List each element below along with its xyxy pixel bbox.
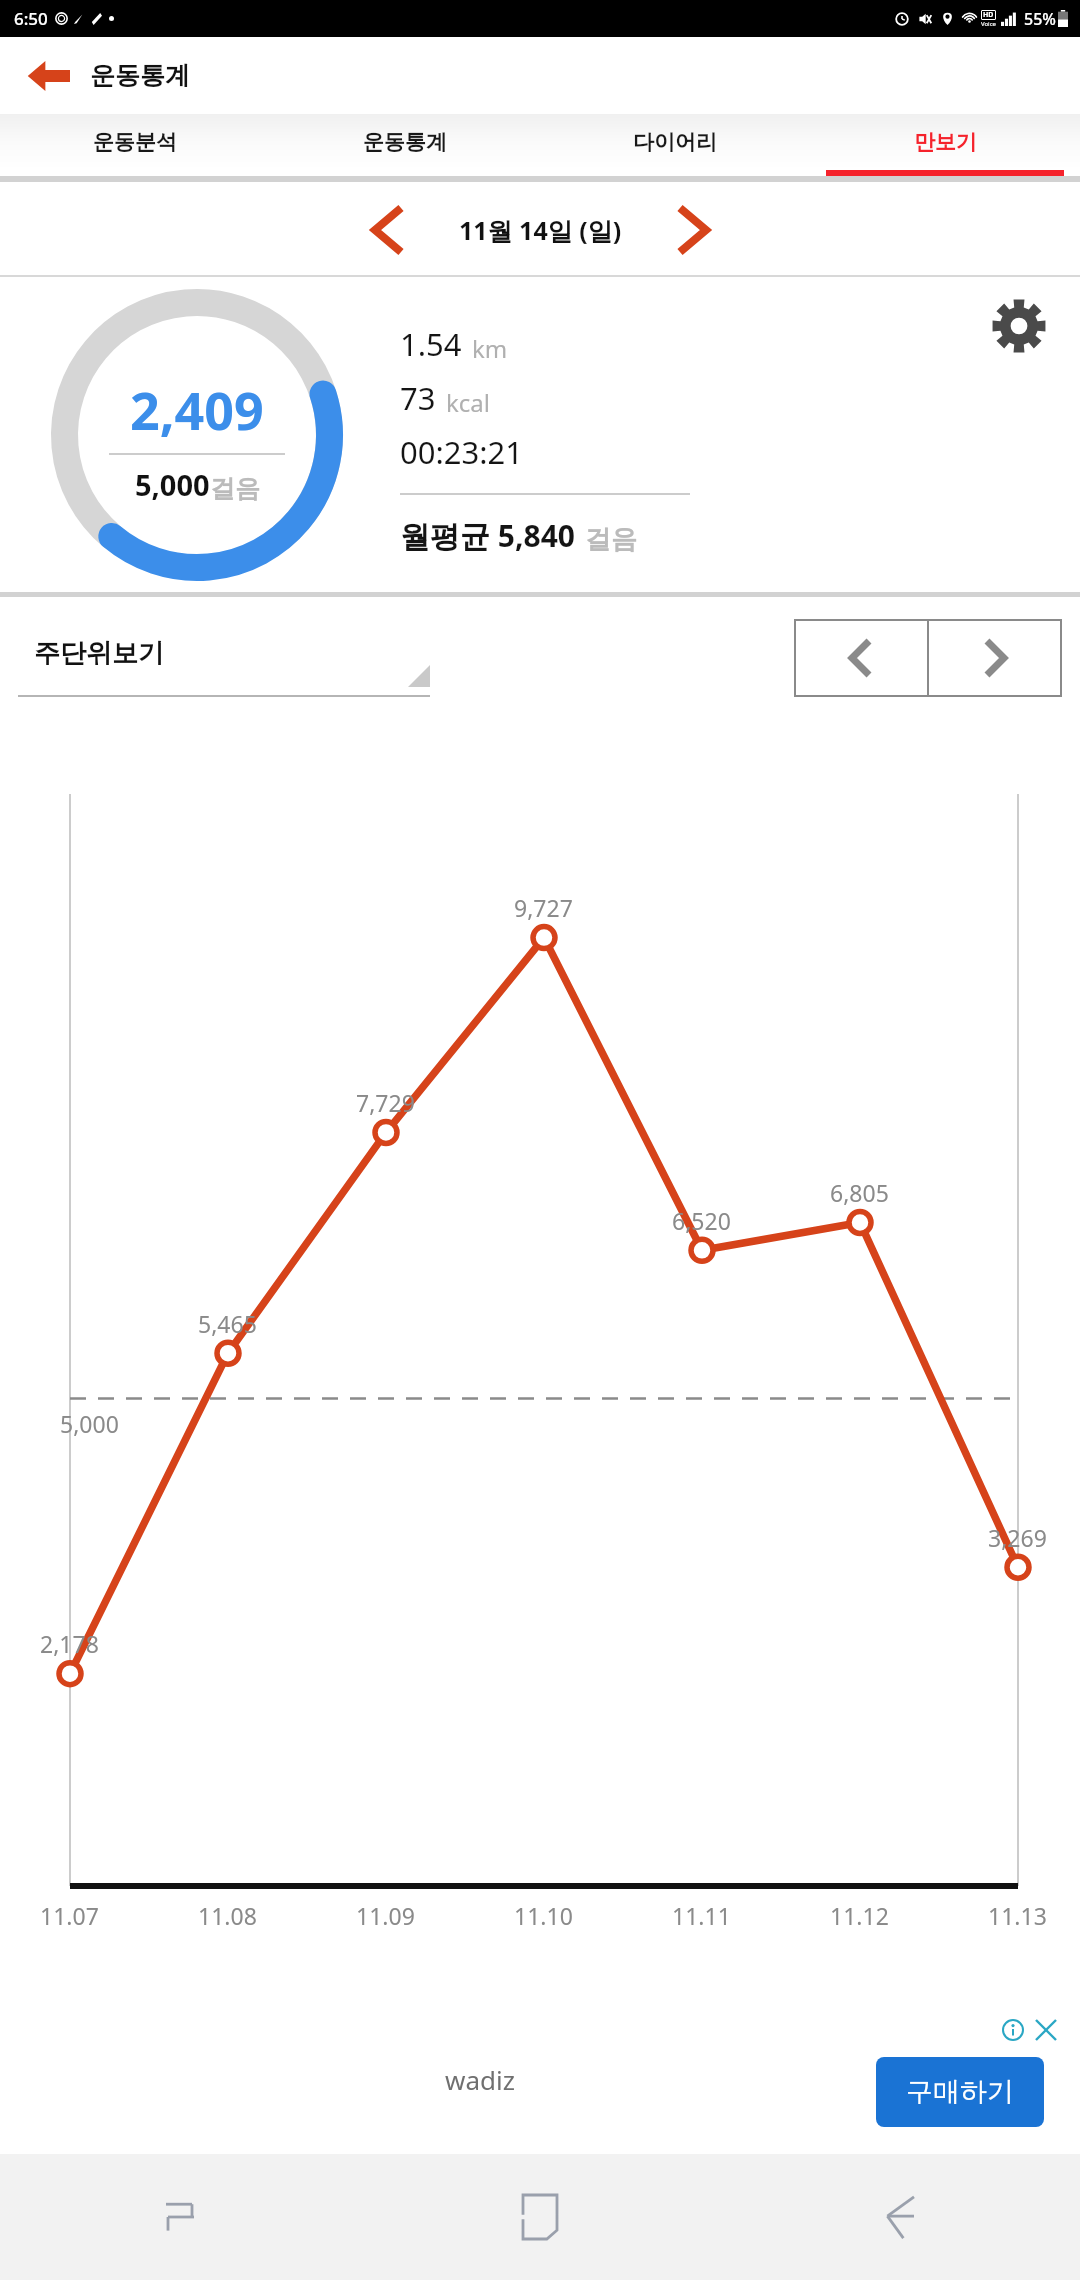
button[interactable]: Back	[720, 2154, 1080, 2280]
staticText: 걸음	[210, 473, 260, 504]
staticText: 7,729	[356, 1087, 415, 1118]
button[interactable]: Previous week	[794, 619, 927, 697]
button[interactable]: 만보기	[810, 114, 1080, 170]
button[interactable]: Previous day	[345, 187, 431, 273]
staticText: Voice	[981, 20, 996, 28]
staticText: 9,727	[514, 892, 573, 923]
staticText: 11월 14일 (일)	[459, 213, 622, 247]
staticText: 구매하기	[906, 2075, 1014, 2109]
staticText: 6:50	[14, 7, 48, 30]
button[interactable]: Next day	[650, 187, 736, 273]
staticText: 11.11	[672, 1900, 731, 1931]
staticText: 11.07	[40, 1900, 99, 1931]
button[interactable]: 구매하기	[876, 2057, 1044, 2127]
staticText: 운동통계	[90, 60, 190, 91]
staticText: 2,178	[40, 1628, 99, 1659]
button[interactable]: Next week	[929, 619, 1062, 697]
button[interactable]: Recents	[0, 2154, 360, 2280]
staticText: 만보기	[914, 129, 977, 155]
button[interactable]: Home	[360, 2154, 720, 2280]
staticText: wadiz	[445, 2062, 515, 2097]
staticText: 11.12	[830, 1900, 889, 1931]
button[interactable]: 다이어리	[540, 114, 810, 170]
staticText: 2,409	[130, 374, 264, 445]
staticText: 55%	[1024, 8, 1056, 30]
staticText: 운동분석	[93, 129, 177, 155]
staticText: 월평균 5,840	[400, 515, 575, 556]
button[interactable]: 운동통계	[270, 114, 540, 170]
staticText: 걸음	[585, 523, 637, 556]
button[interactable]: Close ad	[1034, 2018, 1058, 2042]
button[interactable]: 주단위보기	[18, 619, 430, 697]
staticText: 11.13	[988, 1900, 1047, 1931]
staticText: 3,269	[988, 1522, 1047, 1553]
staticText: 73	[400, 377, 436, 419]
staticText: kcal	[446, 386, 490, 419]
button[interactable]: Settings	[982, 289, 1056, 363]
staticText: 5,000	[60, 1408, 119, 1439]
staticText: 5,465	[198, 1308, 257, 1339]
staticText: 6,805	[830, 1177, 889, 1208]
staticText: km	[472, 332, 508, 365]
staticText: 00:23:21	[400, 431, 524, 473]
button[interactable]: 운동분석	[0, 114, 270, 170]
staticText: 1.54	[400, 323, 462, 365]
staticText: 11.10	[514, 1900, 573, 1931]
button[interactable]: Back	[18, 46, 78, 106]
staticText: 5,000	[135, 465, 210, 504]
staticText: 11.08	[198, 1900, 257, 1931]
staticText: 운동통계	[363, 129, 447, 155]
staticText: 11.09	[356, 1900, 415, 1931]
staticText: 6,520	[672, 1205, 731, 1236]
staticText: HD	[983, 10, 994, 20]
staticText: 다이어리	[633, 129, 717, 155]
staticText: 주단위보기	[34, 637, 164, 670]
